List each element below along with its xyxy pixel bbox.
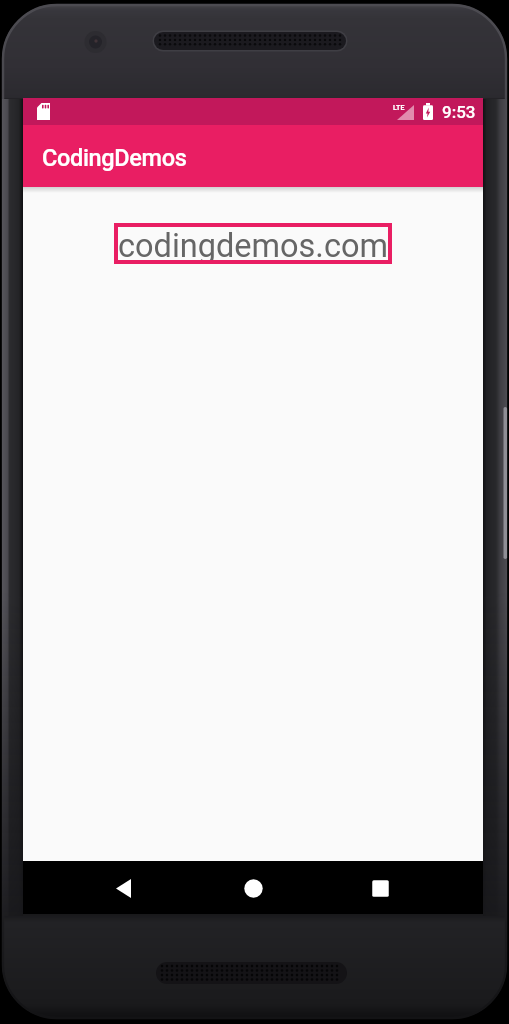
staticText: CodingDemos	[42, 144, 187, 172]
staticText: 9:53	[442, 102, 476, 122]
staticText: codingdemos.com	[118, 227, 388, 265]
staticText: LTE	[393, 104, 405, 112]
button[interactable]	[233, 868, 273, 908]
button[interactable]	[103, 868, 143, 908]
button[interactable]: codingdemos.com	[114, 223, 392, 264]
button[interactable]	[360, 868, 400, 908]
